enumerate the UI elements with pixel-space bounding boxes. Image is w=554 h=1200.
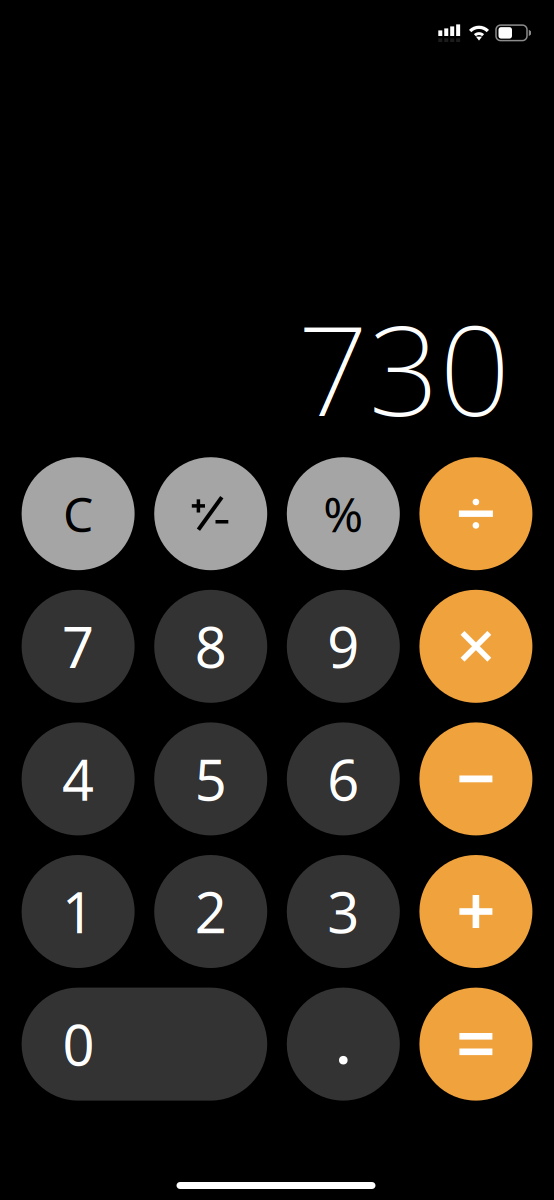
staticText: C — [63, 482, 93, 545]
staticText: 2 — [195, 874, 227, 949]
button[interactable]: Subtract — [419, 722, 532, 835]
staticText: 6 — [327, 742, 359, 816]
button[interactable]: 8 — [154, 590, 267, 703]
staticText: 4 — [62, 742, 94, 816]
button[interactable]: Plus minus — [154, 457, 267, 570]
staticText: 1 — [62, 874, 94, 949]
button[interactable]: 9 — [287, 590, 400, 703]
staticText: 8 — [195, 609, 227, 683]
button[interactable]: 7 — [22, 590, 135, 703]
staticText: 7 — [62, 609, 94, 683]
staticText: 9 — [327, 609, 359, 683]
button[interactable]: 6 — [287, 722, 400, 835]
button[interactable]: 3 — [287, 855, 400, 968]
button[interactable]: 0 — [22, 988, 267, 1101]
staticText: % — [323, 482, 363, 545]
staticText: 730 — [297, 286, 510, 450]
button[interactable]: Add — [419, 855, 532, 968]
button[interactable]: C — [22, 457, 135, 570]
button[interactable]: Equals — [419, 988, 532, 1101]
button[interactable]: 5 — [154, 722, 267, 835]
button[interactable]: Divide — [419, 457, 532, 570]
staticText: 5 — [195, 742, 227, 816]
button[interactable]: Decimal point — [287, 988, 400, 1101]
button[interactable]: 4 — [22, 722, 135, 835]
staticText: 3 — [327, 874, 359, 949]
button[interactable]: Multiply — [419, 590, 532, 703]
button[interactable]: % — [287, 457, 400, 570]
button[interactable]: 1 — [22, 855, 135, 968]
staticText: 0 — [63, 1007, 95, 1081]
button[interactable]: 2 — [154, 855, 267, 968]
